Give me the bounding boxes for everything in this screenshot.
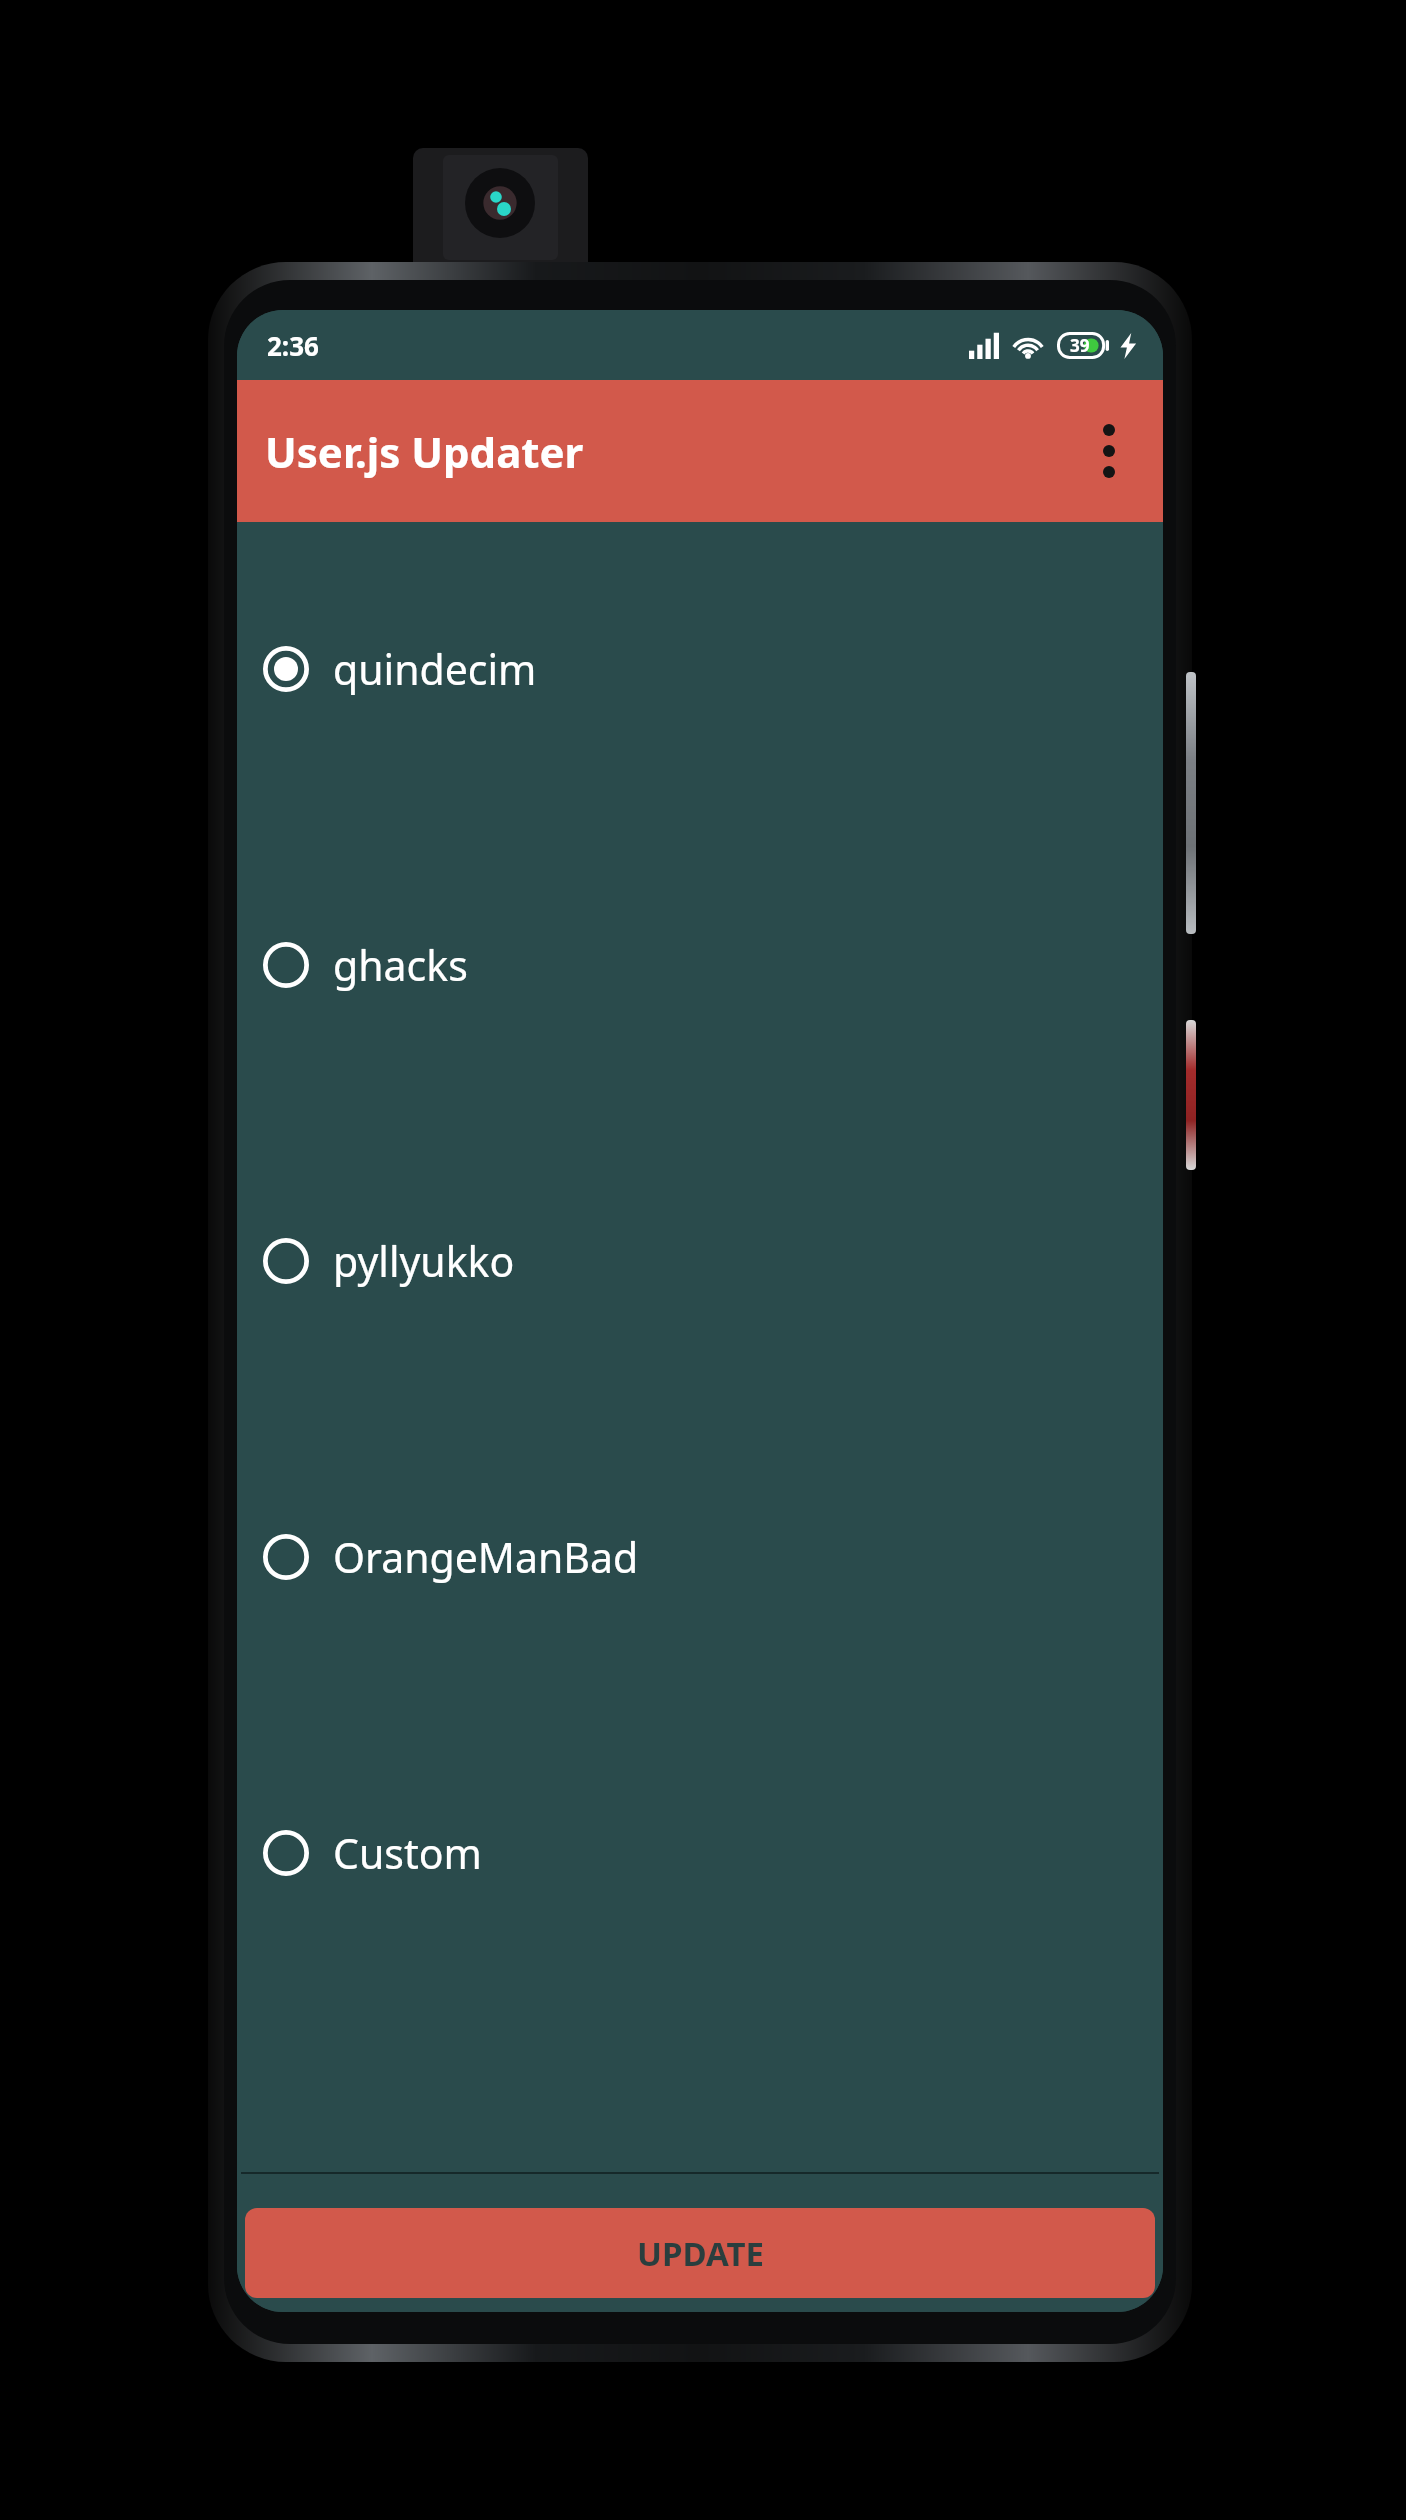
button[interactable]: ghacks (237, 913, 1163, 1017)
staticText: UPDATE (637, 2231, 764, 2276)
button[interactable]: OrangeManBad (237, 1505, 1163, 1609)
staticText: 2:36 (267, 328, 319, 363)
button[interactable]: quindecim (237, 617, 1163, 721)
staticText: ghacks (333, 937, 468, 993)
button[interactable]: pyllyukko (237, 1209, 1163, 1313)
staticText: pyllyukko (333, 1233, 515, 1289)
staticText: User.js Updater (265, 423, 584, 480)
staticText: Custom (333, 1825, 482, 1881)
button[interactable]: UPDATE (245, 2208, 1155, 2298)
staticText: 39 (1070, 334, 1090, 357)
staticText: OrangeManBad (333, 1529, 639, 1585)
button[interactable]: Custom (237, 1801, 1163, 1905)
button[interactable]: More options (1073, 415, 1145, 487)
staticText: quindecim (333, 641, 537, 697)
